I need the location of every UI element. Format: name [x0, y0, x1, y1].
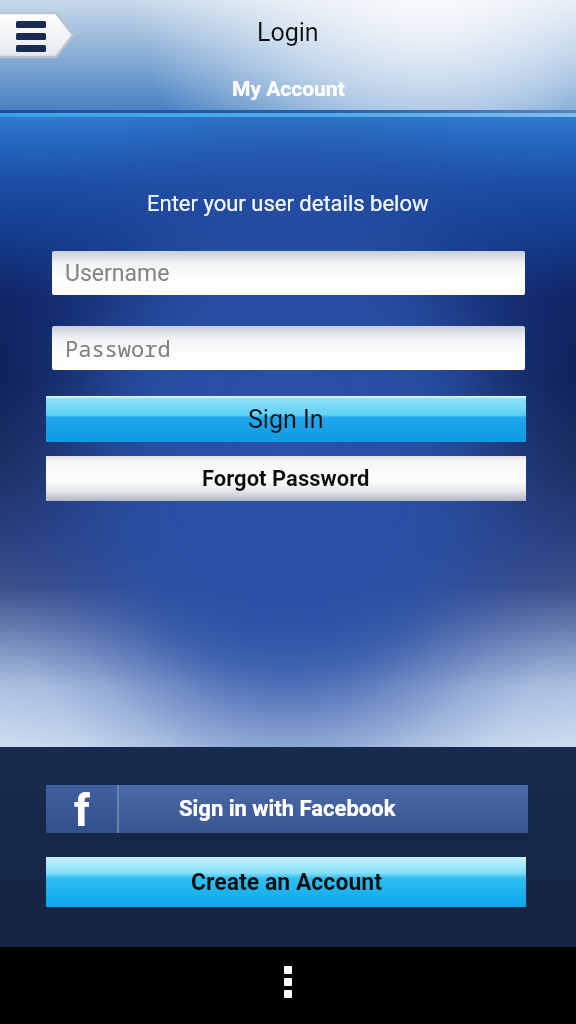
button[interactable] — [0, 13, 76, 57]
button[interactable]: Create an Account — [46, 857, 526, 907]
staticText: My Account — [232, 77, 345, 102]
staticText: Sign in with Facebook — [179, 796, 396, 822]
button[interactable] — [270, 958, 306, 1006]
button[interactable]: Sign In — [46, 396, 526, 442]
staticText: Create an Account — [191, 869, 382, 896]
button[interactable]: f — [46, 785, 528, 833]
button[interactable]: Username — [52, 251, 525, 295]
button[interactable]: Password — [52, 326, 525, 370]
staticText: Password — [65, 333, 171, 363]
staticText: Enter your user details below — [147, 191, 429, 217]
staticText: f — [74, 785, 90, 833]
staticText: Username — [65, 260, 170, 287]
staticText: Forgot Password — [202, 466, 370, 492]
staticText: Sign In — [248, 405, 324, 434]
staticText: Login — [257, 18, 319, 47]
button[interactable]: Forgot Password — [46, 456, 526, 501]
